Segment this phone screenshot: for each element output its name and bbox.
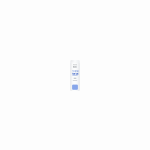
staticText: N U X E — [73, 66, 77, 68]
staticText: Crème — [71, 69, 78, 73]
button[interactable]: NUXE Crème Fraîche de Beauté — [70, 60, 80, 91]
staticText: nuxe — [73, 64, 77, 65]
staticText: FRAICHE — [71, 73, 78, 75]
